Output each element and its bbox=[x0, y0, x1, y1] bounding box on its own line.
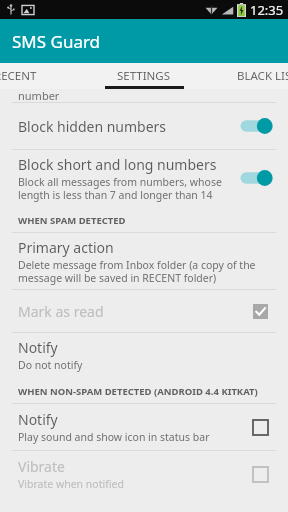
button[interactable]: Notify bbox=[0, 333, 288, 377]
staticText: SMS Guard bbox=[12, 30, 101, 53]
staticText: Block all messages from numbers, whose l… bbox=[18, 175, 222, 202]
button[interactable]: Block short and long numbers bbox=[0, 150, 288, 206]
staticText: WHEN NON-SPAM DETECTED (ANDROID 4.4 KITK… bbox=[18, 385, 258, 398]
staticText: Vibrate bbox=[18, 457, 65, 476]
staticText: number bbox=[18, 88, 60, 101]
staticText: Vibrate when notified bbox=[18, 477, 124, 491]
button[interactable]: Checkbox bbox=[248, 299, 272, 323]
button[interactable]: Mark as read bbox=[0, 290, 288, 332]
staticText: RECENT bbox=[0, 68, 37, 84]
staticText: Block short and long numbers bbox=[18, 155, 217, 174]
staticText: Play sound and show icon in status bar bbox=[18, 430, 210, 444]
button[interactable]: BLACK LIST bbox=[192, 63, 288, 89]
staticText: BLACK LIST bbox=[237, 68, 288, 84]
button[interactable]: Notify bbox=[0, 404, 288, 450]
staticText: Notify bbox=[18, 338, 58, 357]
button[interactable]: RECENT bbox=[0, 63, 96, 89]
staticText: Notify bbox=[18, 410, 58, 429]
staticText: 12:35 bbox=[250, 1, 284, 19]
button[interactable]: Checkbox bbox=[248, 462, 272, 486]
staticText: Do not notify bbox=[18, 358, 83, 372]
staticText: Primary action bbox=[18, 238, 114, 257]
staticText: Block hidden numbers bbox=[18, 117, 167, 136]
staticText: Mark as read bbox=[18, 302, 104, 321]
staticText: SETTINGS bbox=[117, 68, 171, 84]
button[interactable]: SETTINGS bbox=[96, 63, 192, 89]
staticText: WHEN SPAM DETECTED bbox=[18, 214, 126, 227]
button[interactable]: Checkbox bbox=[248, 415, 272, 439]
button[interactable]: Toggle bbox=[238, 167, 274, 189]
button[interactable]: Toggle bbox=[238, 115, 274, 137]
button[interactable]: Primary action bbox=[0, 233, 288, 289]
button[interactable]: Block hidden numbers bbox=[0, 103, 288, 149]
button[interactable]: Vibrate bbox=[0, 451, 288, 497]
staticText: Delete message from Inbox folder (a copy… bbox=[18, 258, 256, 285]
